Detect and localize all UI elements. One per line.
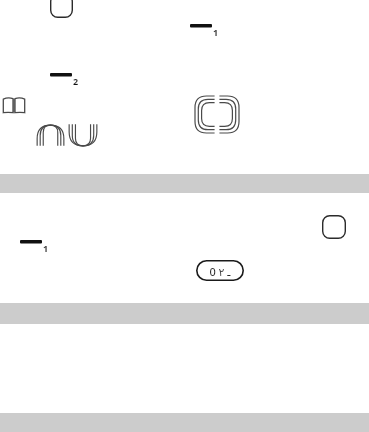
staticText: 1 — [43, 242, 49, 254]
button[interactable]: Frame — [50, 0, 73, 18]
button[interactable]: 2 — [50, 71, 84, 87]
button[interactable]: Arch down — [68, 123, 98, 147]
button[interactable]: Brackets — [195, 96, 239, 133]
staticText: 2 — [73, 75, 79, 87]
staticText: 1 — [213, 26, 219, 38]
staticText: 0 ـ ٢ — [196, 264, 244, 279]
button[interactable]: Frame — [322, 215, 346, 239]
button[interactable]: Arch up — [36, 124, 65, 147]
button[interactable]: 1 — [20, 238, 54, 254]
button[interactable]: 0 ـ ٢ — [196, 260, 244, 281]
button[interactable]: Book — [2, 97, 26, 114]
button[interactable]: 1 — [190, 22, 224, 38]
